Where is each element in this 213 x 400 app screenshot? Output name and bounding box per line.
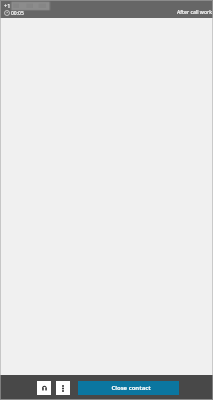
staticText: After call work: [177, 8, 212, 14]
staticText: +1: [4, 2, 11, 8]
button[interactable]: Close contact: [78, 381, 179, 395]
button[interactable]: Contact details: [37, 381, 51, 395]
staticText: Close contact: [111, 384, 151, 392]
staticText: 00:05: [11, 10, 24, 16]
button[interactable]: More options: [56, 381, 70, 395]
